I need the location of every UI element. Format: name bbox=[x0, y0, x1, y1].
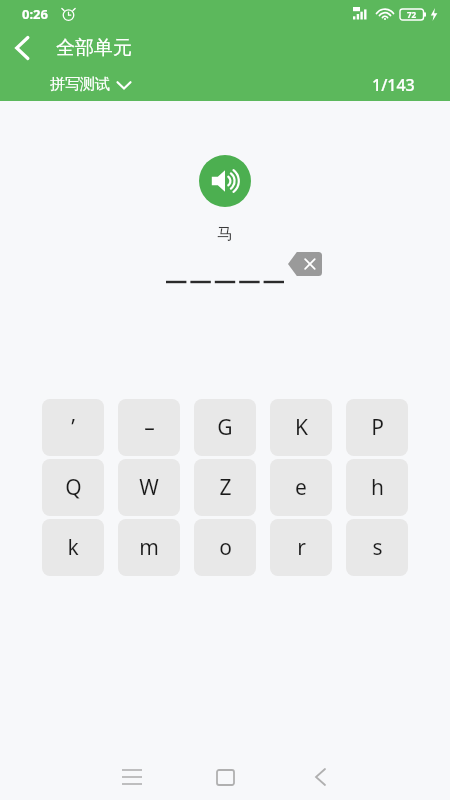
staticText: 全部单元 bbox=[56, 36, 132, 60]
button[interactable]: Play pronunciation bbox=[199, 155, 251, 207]
staticText: 拼写测试 bbox=[50, 75, 110, 94]
button[interactable]: s bbox=[346, 519, 408, 576]
staticText: G bbox=[217, 413, 233, 442]
button[interactable]: o bbox=[194, 519, 256, 576]
button[interactable]: G bbox=[194, 399, 256, 456]
staticText: r bbox=[297, 533, 306, 562]
staticText: 0:26 bbox=[22, 5, 48, 23]
staticText: – bbox=[144, 413, 155, 442]
staticText: W bbox=[139, 473, 159, 502]
button[interactable]: k bbox=[42, 519, 104, 576]
staticText: 马 bbox=[217, 224, 233, 244]
staticText: P bbox=[371, 413, 384, 442]
button[interactable]: 拼写测试 bbox=[50, 75, 132, 94]
staticText: m bbox=[139, 533, 159, 562]
button[interactable]: Backspace bbox=[288, 252, 322, 276]
button[interactable]: r bbox=[270, 519, 332, 576]
button[interactable]: W bbox=[118, 459, 180, 516]
staticText: k bbox=[67, 533, 79, 562]
button[interactable]: Home bbox=[203, 755, 247, 799]
staticText: Z bbox=[219, 473, 232, 502]
staticText: K bbox=[295, 413, 308, 442]
button[interactable]: e bbox=[270, 459, 332, 516]
button[interactable]: P bbox=[346, 399, 408, 456]
staticText: Q bbox=[65, 473, 82, 502]
staticText: 1/143 bbox=[372, 74, 415, 96]
staticText: e bbox=[295, 473, 307, 502]
button[interactable]: ’ bbox=[42, 399, 104, 456]
staticText: h bbox=[371, 473, 384, 502]
button[interactable]: m bbox=[118, 519, 180, 576]
button[interactable]: – bbox=[118, 399, 180, 456]
staticText: 72 bbox=[407, 9, 417, 20]
button[interactable]: Recent apps bbox=[110, 755, 154, 799]
staticText: ’ bbox=[71, 413, 75, 442]
button[interactable]: Back bbox=[0, 28, 44, 68]
button[interactable]: h bbox=[346, 459, 408, 516]
button[interactable]: Z bbox=[194, 459, 256, 516]
button[interactable]: K bbox=[270, 399, 332, 456]
button[interactable]: Q bbox=[42, 459, 104, 516]
staticText: s bbox=[372, 533, 383, 562]
button[interactable]: Back bbox=[298, 755, 342, 799]
staticText: o bbox=[219, 533, 232, 562]
